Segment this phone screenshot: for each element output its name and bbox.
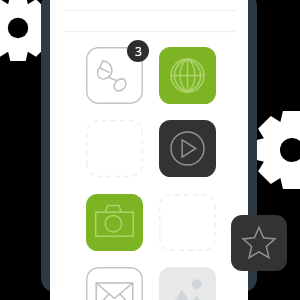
staticText: 3 — [135, 43, 142, 59]
button[interactable]: Mail — [86, 267, 143, 300]
button[interactable]: Phone — [86, 47, 143, 104]
button[interactable]: Favorites — [231, 215, 287, 271]
button[interactable]: Camera — [86, 194, 143, 251]
button[interactable]: Empty slot — [86, 120, 143, 177]
button[interactable]: Play video — [159, 120, 216, 177]
button[interactable]: 3 missed calls — [127, 40, 149, 62]
button[interactable]: Browser — [159, 47, 216, 104]
button[interactable]: Empty slot — [159, 194, 216, 251]
button[interactable]: Photos — [159, 267, 216, 300]
